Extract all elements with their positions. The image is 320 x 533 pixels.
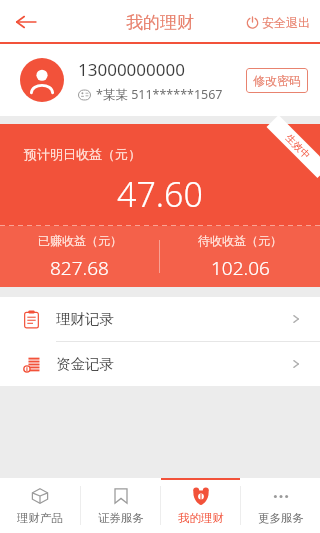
staticText: 待收收益（元） xyxy=(198,233,282,248)
staticText: 827.68 xyxy=(50,255,109,281)
staticText: 我的理财 xyxy=(126,12,194,33)
button[interactable]: 修改密码 xyxy=(246,68,308,93)
staticText: 修改密码 xyxy=(253,73,301,88)
button[interactable]: 理财产品 xyxy=(0,478,80,533)
staticText: 理财记录 xyxy=(56,310,290,328)
button[interactable]: 更多服务 xyxy=(241,478,320,533)
staticText: 13000000000 xyxy=(78,58,185,81)
staticText: 更多服务 xyxy=(258,511,304,525)
staticText: 102.06 xyxy=(211,255,270,281)
staticText: 证券服务 xyxy=(98,511,144,525)
staticText: 我的理财 xyxy=(178,511,224,525)
staticText: 预计明日收益（元） xyxy=(24,146,141,162)
staticText: 理财产品 xyxy=(17,511,63,525)
staticText: 47.60 xyxy=(117,171,203,217)
staticText: 资金记录 xyxy=(56,355,290,373)
button[interactable]: 我的理财 xyxy=(161,478,240,533)
button[interactable]: Back xyxy=(6,2,46,42)
button[interactable]: 安全退出 xyxy=(244,9,312,36)
button[interactable]: 理财记录 xyxy=(0,297,320,341)
staticText: 安全退出 xyxy=(262,15,310,30)
staticText: *某某 511******1567 xyxy=(96,86,223,103)
button[interactable]: 13000000000 xyxy=(0,44,320,116)
button[interactable]: 资金记录 xyxy=(0,342,320,386)
button[interactable]: 证券服务 xyxy=(81,478,160,533)
staticText: 生效中 xyxy=(283,131,313,162)
staticText: 已赚收益（元） xyxy=(38,233,122,248)
